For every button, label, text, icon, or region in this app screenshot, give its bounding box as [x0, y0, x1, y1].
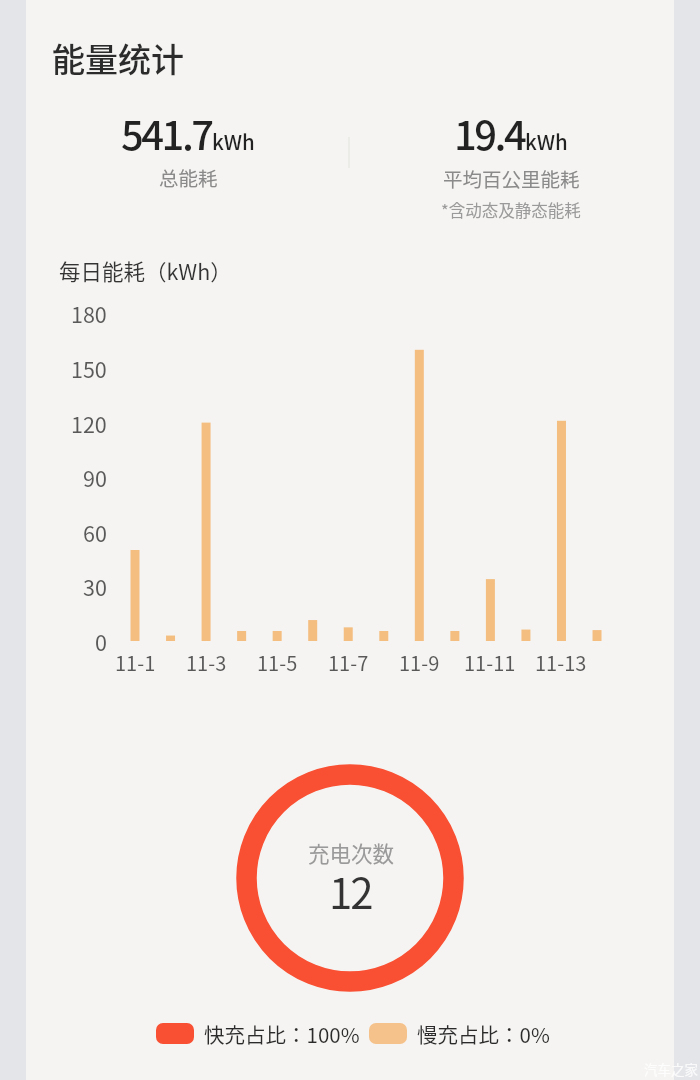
button[interactable]: [156, 1023, 194, 1044]
button[interactable]: [369, 1023, 407, 1044]
staticText: 60: [83, 517, 107, 548]
staticText: 30: [83, 571, 107, 602]
staticText: 11-13: [535, 648, 587, 677]
staticText: 每日能耗（kWh）: [59, 255, 232, 286]
staticText: 12: [329, 860, 372, 921]
staticText: 11-7: [328, 648, 369, 677]
staticText: 慢充占比：0%: [417, 1019, 550, 1049]
staticText: 11-9: [399, 648, 440, 677]
staticText: kWh: [525, 126, 568, 156]
staticText: 总能耗: [159, 163, 218, 191]
staticText: 19.4: [454, 104, 525, 162]
staticText: 11-1: [115, 648, 156, 677]
staticText: 90: [83, 462, 107, 493]
staticText: 充电次数: [308, 837, 395, 868]
staticText: 0: [95, 626, 107, 657]
staticText: 快充占比：100%: [204, 1019, 360, 1049]
staticText: 180: [71, 298, 107, 329]
staticText: 11-11: [464, 648, 516, 677]
staticText: *含动态及静态能耗: [441, 198, 581, 222]
staticText: 11-5: [257, 648, 298, 677]
staticText: kWh: [212, 126, 255, 156]
staticText: 150: [71, 353, 107, 384]
staticText: 平均百公里能耗: [443, 164, 580, 192]
staticText: 汽车之家: [644, 1059, 698, 1079]
staticText: 541.7: [121, 104, 212, 162]
staticText: 能量统计: [52, 34, 184, 82]
staticText: 120: [71, 408, 107, 439]
staticText: 11-3: [186, 648, 227, 677]
